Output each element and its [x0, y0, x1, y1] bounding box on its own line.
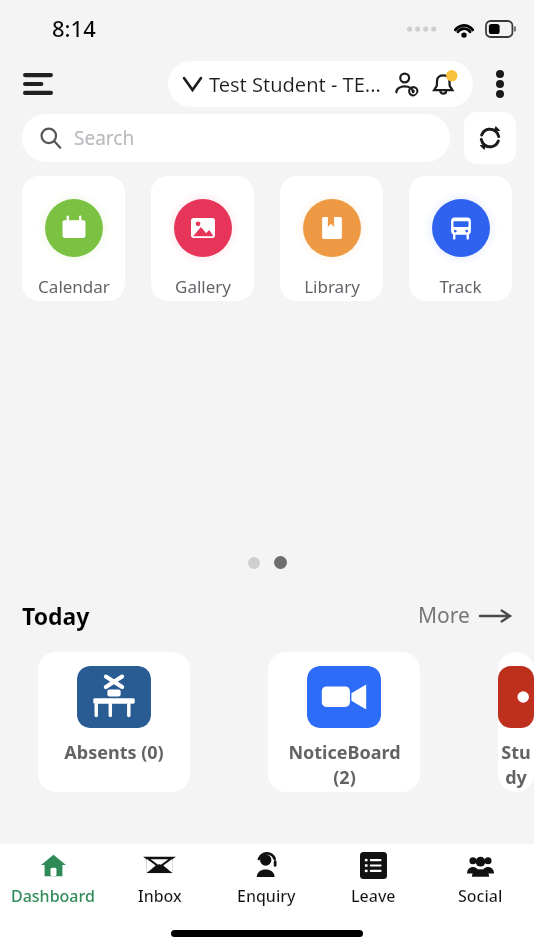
button[interactable]: Enquiry	[213, 844, 320, 916]
staticText: Gallery	[175, 275, 231, 298]
staticText: 8:14	[52, 13, 96, 43]
staticText: Track	[439, 275, 482, 298]
staticText: Inbox	[138, 885, 182, 907]
button[interactable]: Gallery	[151, 176, 254, 301]
staticText: Today	[22, 600, 90, 631]
staticText: Study	[498, 740, 534, 790]
button[interactable]: More options	[478, 62, 522, 106]
staticText: NoticeBoard	[288, 740, 401, 765]
staticText: Enquiry	[237, 885, 296, 907]
staticText: More	[418, 601, 470, 630]
staticText: Dashboard	[11, 885, 95, 907]
button[interactable]: Calendar	[22, 176, 125, 301]
button[interactable]: Track	[409, 176, 512, 301]
button[interactable]: Profile	[391, 69, 421, 99]
button[interactable]: Refresh	[464, 112, 516, 164]
staticText: Search	[74, 125, 135, 151]
staticText: Absents (0)	[64, 740, 164, 765]
button[interactable]: Search	[22, 114, 450, 162]
button[interactable]: NoticeBoard	[268, 652, 420, 792]
staticText: Leave	[351, 885, 396, 907]
button[interactable]: Menu	[12, 58, 64, 110]
button[interactable]: Inbox	[106, 844, 213, 916]
staticText: Library	[304, 275, 360, 298]
button[interactable]: Dashboard	[0, 844, 106, 916]
button[interactable]: Leave	[320, 844, 427, 916]
staticText: Test Student - TE...	[209, 71, 381, 98]
staticText: Calendar	[38, 275, 110, 298]
button[interactable]: Test Student - TE...	[168, 61, 473, 107]
button[interactable]: Absents (0)	[38, 652, 190, 792]
staticText: Social	[458, 885, 503, 907]
button[interactable]: Study	[498, 652, 534, 792]
button[interactable]: Library	[280, 176, 383, 301]
button[interactable]: Notifications	[427, 67, 461, 101]
staticText: (2)	[333, 765, 356, 790]
button[interactable]: Social	[427, 844, 534, 916]
button[interactable]: More	[412, 597, 516, 634]
